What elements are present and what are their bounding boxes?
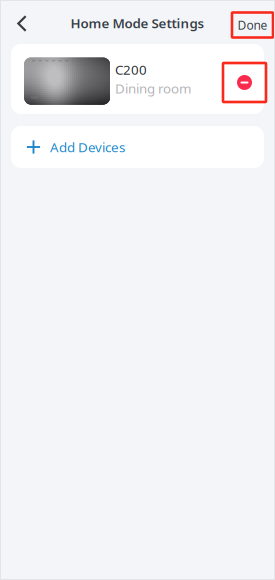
button[interactable]: Add Devices — [11, 126, 264, 168]
button[interactable]: Back — [7, 8, 37, 38]
staticText: C200 — [115, 61, 147, 78]
staticText: Home Mode Settings — [70, 14, 204, 32]
staticText: Done — [237, 17, 267, 33]
button[interactable]: Done — [232, 12, 273, 37]
staticText: Dining room — [115, 79, 191, 97]
staticText: Add Devices — [50, 138, 125, 156]
button[interactable]: Remove C200 — [223, 63, 266, 102]
